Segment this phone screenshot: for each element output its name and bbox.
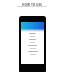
staticText: HOW TO USE: [22, 3, 42, 7]
staticText: Setup guide for your Relay: [17, 4, 47, 7]
button[interactable]: [21, 33, 44, 55]
